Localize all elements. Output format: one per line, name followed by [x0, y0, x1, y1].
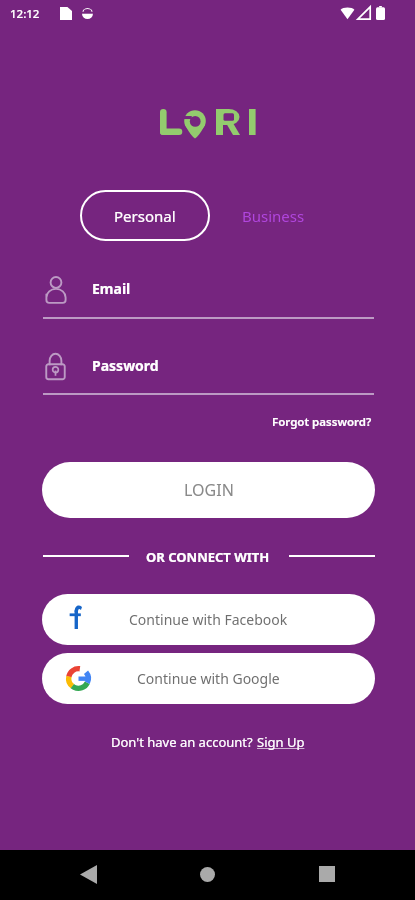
staticText: Sign Up	[257, 733, 305, 751]
staticText: Business	[242, 206, 305, 226]
staticText: 12:12	[10, 6, 40, 22]
staticText: OR CONNECT WITH	[146, 548, 270, 566]
button[interactable]: Personal	[80, 190, 210, 241]
staticText: Continue with Google	[137, 669, 280, 688]
button[interactable]: Continue with Google	[42, 653, 375, 704]
button[interactable]: Recent apps	[303, 850, 351, 898]
button[interactable]: Home	[183, 850, 231, 898]
button[interactable]: Back	[64, 850, 112, 898]
staticText: Password	[92, 356, 159, 375]
button[interactable]: LOGIN	[42, 462, 375, 518]
button[interactable]: Business	[240, 190, 306, 241]
button[interactable]: Forgot password?	[272, 412, 372, 432]
button[interactable]: Continue with Facebook	[42, 594, 375, 645]
staticText: Don't have an account?	[111, 733, 257, 751]
staticText: Email	[92, 279, 131, 298]
button[interactable]: Sign Up	[257, 733, 305, 751]
staticText: Forgot password?	[272, 414, 372, 430]
staticText: Personal	[114, 206, 176, 226]
staticText: LOGIN	[184, 479, 234, 501]
staticText: Continue with Facebook	[129, 610, 288, 629]
